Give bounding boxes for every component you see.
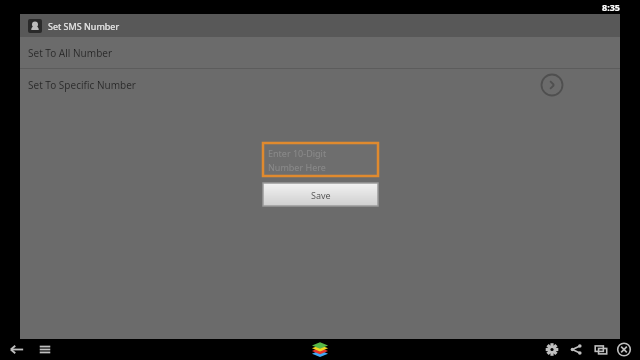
button[interactable]: Enter 10-Digit xyxy=(263,143,378,176)
button[interactable]: Menu xyxy=(34,339,56,360)
button[interactable]: Set To All Number xyxy=(20,37,620,68)
button[interactable]: Windows xyxy=(588,339,612,360)
button[interactable]: Settings xyxy=(540,339,564,360)
button[interactable]: Close xyxy=(612,339,636,360)
button[interactable]: Set SMS Number xyxy=(20,14,620,37)
button[interactable]: Set To Specific Number xyxy=(20,69,620,100)
staticText: 8:35 xyxy=(602,1,620,13)
staticText: Number Here xyxy=(268,161,326,173)
button[interactable]: Save xyxy=(263,183,378,206)
other: Open xyxy=(540,73,564,97)
staticText: Save xyxy=(311,189,331,201)
button[interactable]: Back xyxy=(6,339,28,360)
staticText: Set To Specific Number xyxy=(28,78,136,92)
button[interactable]: Share xyxy=(564,339,588,360)
button[interactable]: Home xyxy=(307,339,333,360)
staticText: Set SMS Number xyxy=(48,20,120,32)
staticText: Enter 10-Digit xyxy=(268,147,327,159)
staticText: Set To All Number xyxy=(28,46,113,60)
